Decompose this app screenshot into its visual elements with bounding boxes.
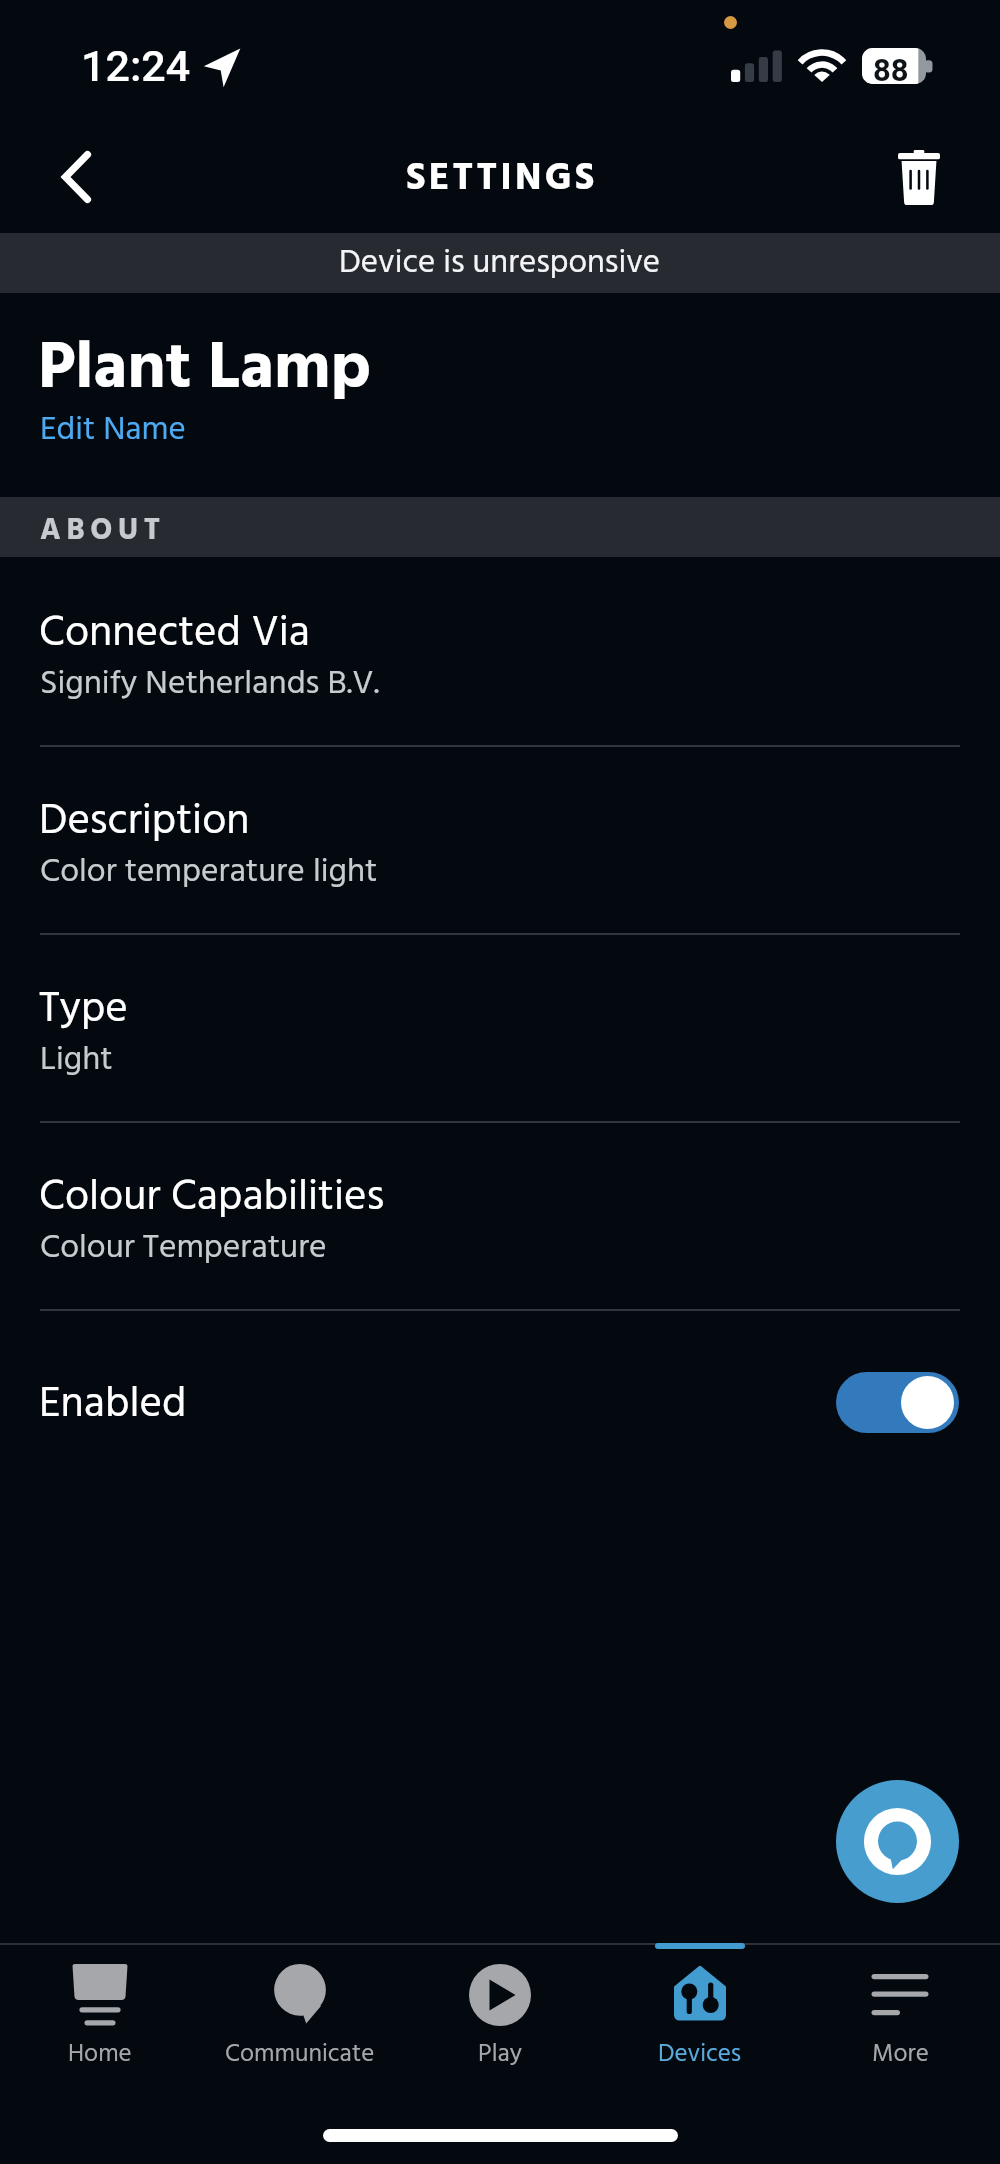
button[interactable]: Devices [600, 1943, 800, 2073]
button[interactable]: Communicate [200, 1943, 400, 2073]
staticText: Colour Capabilities [39, 1164, 385, 1233]
staticText: Home [68, 2035, 132, 2075]
button[interactable]: Type [0, 933, 1000, 1121]
staticText: Type [39, 976, 128, 1045]
button[interactable]: Home [0, 1943, 200, 2073]
button[interactable]: Edit Name [40, 404, 186, 457]
staticText: More [872, 2035, 929, 2075]
staticText: 12:24 [81, 41, 191, 91]
staticText: Description [39, 788, 250, 857]
button[interactable]: Description [0, 745, 1000, 933]
button[interactable]: Enabled [0, 1309, 1000, 1499]
staticText: Plant Lamp [38, 317, 371, 423]
staticText: 88 [873, 52, 909, 88]
button[interactable]: Play [400, 1943, 600, 2073]
staticText: Connected Via [39, 600, 310, 669]
staticText: SETTINGS [406, 149, 598, 210]
staticText: Devices [658, 2035, 742, 2075]
staticText: Play [478, 2035, 523, 2075]
staticText: Light [40, 1034, 113, 1088]
staticText: Colour Temperature [40, 1222, 327, 1276]
staticText: Device is unresponsive [339, 237, 661, 290]
staticText: Signify Netherlands B.V. [40, 658, 380, 712]
staticText: Color temperature light [40, 846, 378, 900]
button[interactable]: More [800, 1943, 1000, 2073]
button[interactable]: Alexa [836, 1780, 959, 1903]
button[interactable]: Delete [869, 127, 969, 227]
button[interactable]: Back [26, 127, 126, 227]
button[interactable]: Connected Via [0, 557, 1000, 745]
staticText: Communicate [225, 2035, 375, 2075]
staticText: Enabled [39, 1371, 187, 1440]
staticText: ABOUT [40, 507, 166, 555]
button[interactable]: Colour Capabilities [0, 1121, 1000, 1309]
